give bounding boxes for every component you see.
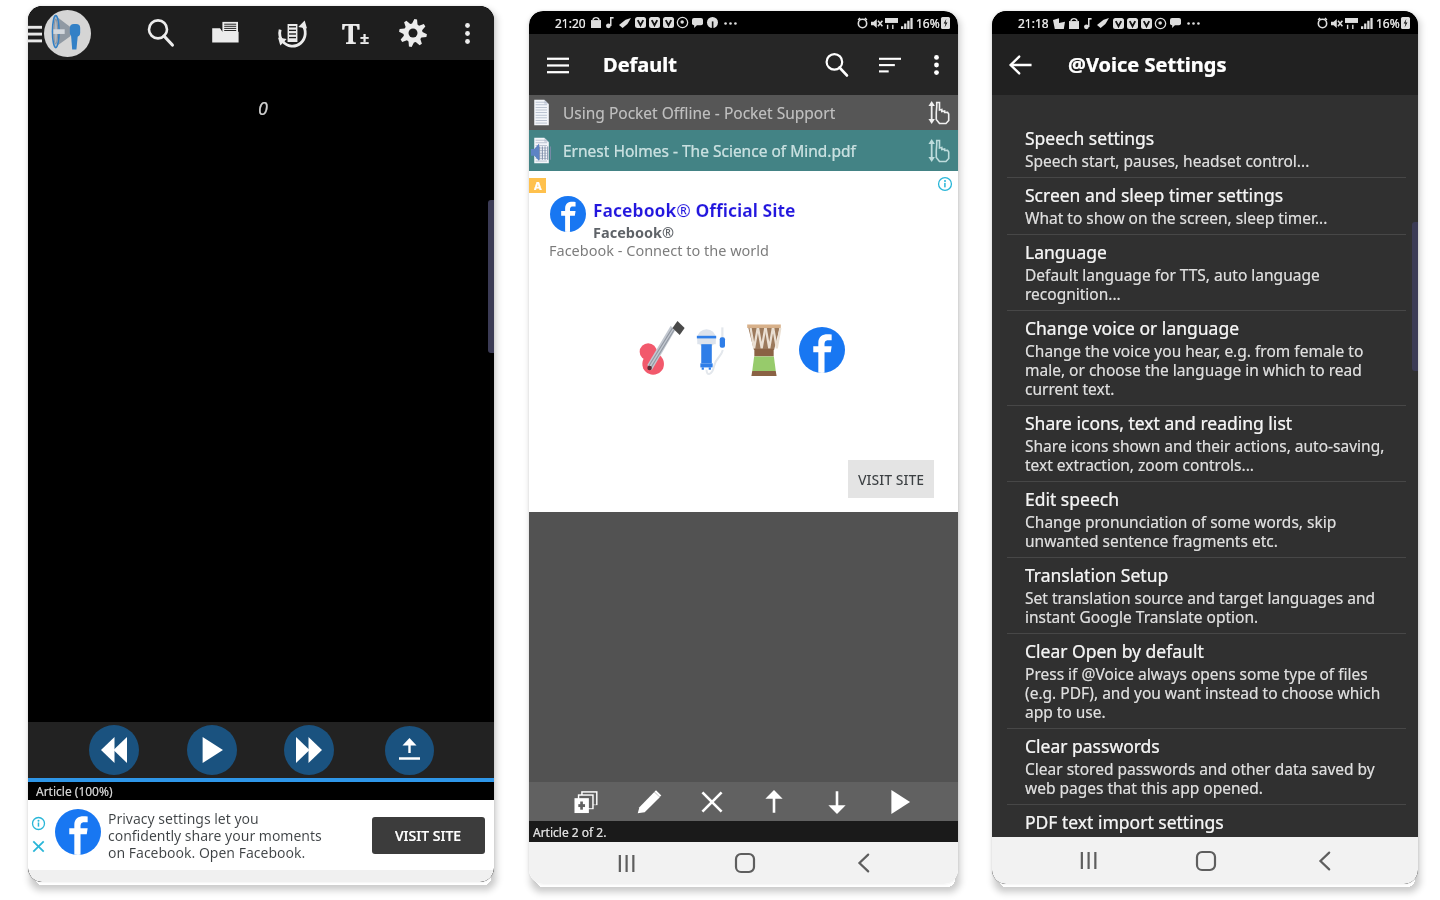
button[interactable]: Ernest Holmes - The Science of Mind.pdf bbox=[529, 130, 958, 171]
button[interactable]: Close ad bbox=[32, 840, 45, 853]
staticText: Change pronunciation of some words, skip… bbox=[1025, 511, 1337, 551]
button[interactable]: Settings bbox=[391, 6, 435, 60]
button[interactable]: App logo bbox=[44, 10, 91, 57]
button[interactable]: VISIT SITE bbox=[372, 817, 485, 854]
staticText: 21:20 bbox=[555, 15, 586, 31]
staticText: A bbox=[534, 178, 542, 193]
button[interactable]: Using Pocket Offline - Pocket Support bbox=[529, 95, 958, 130]
button[interactable]: Open file bbox=[204, 6, 248, 60]
staticText: Default language for TTS, auto language … bbox=[1025, 264, 1320, 304]
staticText: Facebook® Official Site bbox=[593, 198, 796, 222]
button[interactable]: Menu bbox=[28, 25, 42, 42]
button[interactable]: Sort bbox=[868, 34, 912, 95]
button[interactable]: Search bbox=[139, 6, 183, 60]
button[interactable]: Home bbox=[715, 842, 775, 884]
button[interactable]: Edit bbox=[629, 782, 669, 821]
button[interactable]: Speech settings bbox=[992, 126, 1418, 177]
button[interactable]: Recent apps bbox=[595, 842, 655, 884]
button[interactable]: Translation Setup bbox=[992, 563, 1418, 633]
button[interactable]: Text size bbox=[334, 6, 378, 60]
staticText: Ernest Holmes - The Science of Mind.pdf bbox=[563, 140, 920, 161]
button[interactable]: Clear passwords bbox=[992, 734, 1418, 804]
staticText: Clear Open by default bbox=[1025, 639, 1204, 663]
button[interactable]: Clear Open by default bbox=[992, 639, 1418, 728]
staticText: Privacy settings let you confidently sha… bbox=[108, 809, 322, 862]
button[interactable]: Play bbox=[880, 782, 920, 821]
button[interactable]: Edit speech bbox=[992, 487, 1418, 557]
button[interactable]: Back bbox=[992, 34, 1050, 95]
button[interactable]: More options bbox=[914, 34, 958, 95]
button[interactable]: Menu bbox=[535, 34, 581, 95]
staticText: 21:18 bbox=[1018, 15, 1049, 31]
button[interactable]: Change voice or language bbox=[992, 316, 1418, 405]
staticText: Change the voice you hear, e.g. from fem… bbox=[1025, 340, 1364, 399]
staticText: ± bbox=[360, 27, 370, 49]
button[interactable]: Share icons, text and reading list bbox=[992, 411, 1418, 481]
button[interactable]: Add bbox=[566, 782, 606, 821]
staticText: Screen and sleep timer settings bbox=[1025, 183, 1284, 207]
staticText: Edit speech bbox=[1025, 487, 1119, 511]
staticText: Set translation source and target langua… bbox=[1025, 587, 1376, 627]
staticText: Facebook - Connect to the world bbox=[549, 240, 769, 260]
staticText: PDF text import settings bbox=[1025, 810, 1224, 834]
staticText: Clear passwords bbox=[1025, 734, 1160, 758]
button[interactable]: Share bbox=[385, 726, 434, 775]
button[interactable]: Back bbox=[1295, 837, 1355, 884]
staticText: Speech start, pauses, headset control... bbox=[1025, 150, 1310, 171]
staticText: What to show on the screen, sleep timer.… bbox=[1025, 207, 1328, 228]
button[interactable]: Search bbox=[815, 34, 859, 95]
staticText: VISIT SITE bbox=[395, 826, 462, 845]
staticText: Share icons shown and their actions, aut… bbox=[1025, 435, 1385, 475]
staticText: 16% bbox=[916, 15, 940, 31]
staticText: @Voice Settings bbox=[1068, 51, 1227, 78]
button[interactable]: Home bbox=[1176, 837, 1236, 884]
staticText: Using Pocket Offline - Pocket Support bbox=[563, 102, 920, 123]
staticText: VISIT SITE bbox=[858, 470, 925, 489]
staticText: Article (100%) bbox=[36, 783, 113, 799]
button[interactable]: Reload bbox=[270, 6, 314, 60]
staticText: Language bbox=[1025, 240, 1107, 264]
button[interactable]: Back bbox=[834, 842, 894, 884]
staticText: Clear stored passwords and other data sa… bbox=[1025, 758, 1375, 798]
staticText: Facebook® bbox=[593, 222, 675, 242]
staticText: Default bbox=[603, 51, 677, 78]
staticText: Share icons, text and reading list bbox=[1025, 411, 1293, 435]
staticText: T bbox=[342, 15, 360, 52]
button[interactable]: Language bbox=[992, 240, 1418, 310]
button[interactable]: Move down bbox=[817, 782, 857, 821]
staticText: Translation Setup bbox=[1025, 563, 1169, 587]
staticText: 0 bbox=[258, 96, 268, 121]
button[interactable]: Rewind bbox=[89, 725, 139, 775]
button[interactable]: Play bbox=[187, 725, 237, 775]
button[interactable]: Close bbox=[692, 782, 732, 821]
staticText: Press if @Voice always opens some type o… bbox=[1025, 663, 1381, 722]
button[interactable]: More options bbox=[445, 6, 489, 60]
button[interactable]: Move up bbox=[754, 782, 794, 821]
button[interactable]: Recent apps bbox=[1057, 837, 1117, 884]
staticText: Change voice or language bbox=[1025, 316, 1240, 340]
button[interactable]: VISIT SITE bbox=[848, 460, 934, 498]
staticText: Article 2 of 2. bbox=[533, 824, 607, 840]
staticText: Speech settings bbox=[1025, 126, 1155, 150]
button[interactable]: Fast forward bbox=[284, 725, 334, 775]
button[interactable]: Screen and sleep timer settings bbox=[992, 183, 1418, 234]
staticText: 16% bbox=[1376, 15, 1400, 31]
